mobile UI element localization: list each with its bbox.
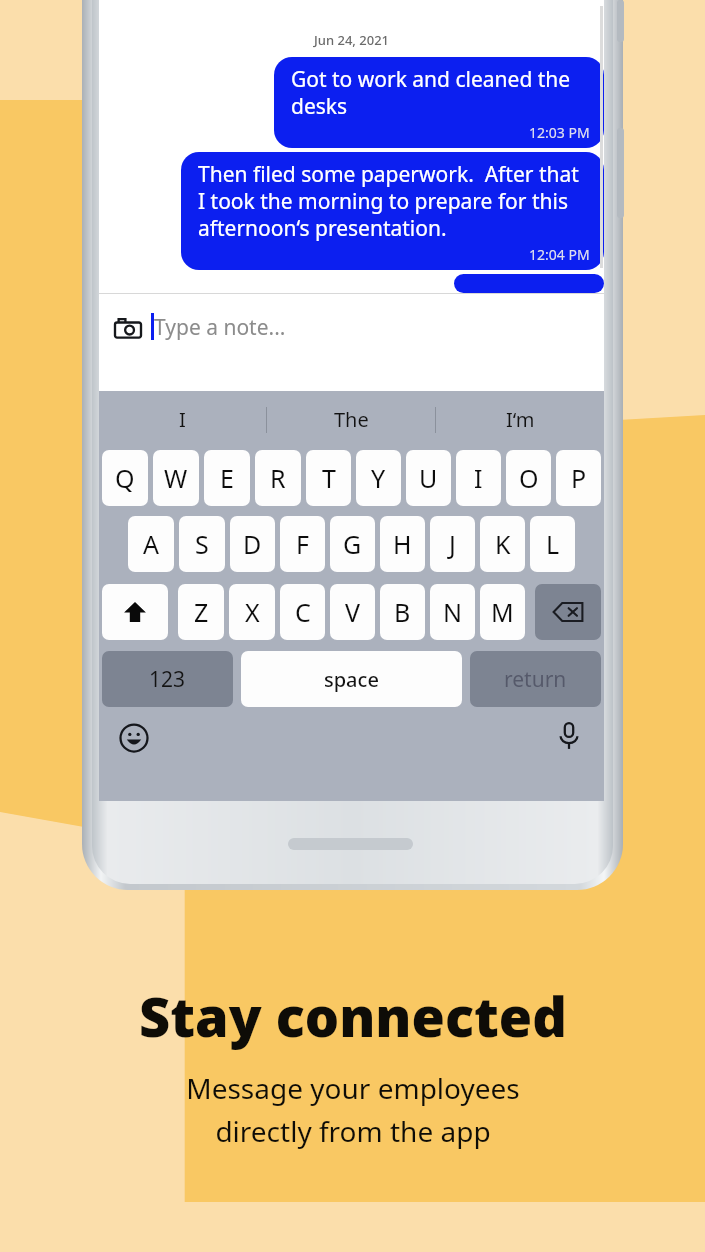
- button[interactable]: I‘m: [436, 391, 604, 448]
- button[interactable]: J: [430, 516, 475, 572]
- staticText: H: [393, 527, 412, 561]
- staticText: Message your employees: [186, 1069, 520, 1107]
- button[interactable]: H: [380, 516, 425, 572]
- button[interactable]: B: [380, 584, 425, 640]
- staticText: 12:03 PM: [529, 123, 590, 142]
- staticText: 123: [149, 665, 186, 694]
- staticText: O: [519, 461, 539, 495]
- staticText: directly from the app: [215, 1112, 491, 1150]
- button[interactable]: Z: [178, 584, 224, 640]
- button[interactable]: K: [480, 516, 525, 572]
- button[interactable]: U: [406, 450, 451, 506]
- staticText: W: [164, 461, 188, 495]
- staticText: X: [245, 595, 260, 629]
- button[interactable]: V: [330, 584, 375, 640]
- button[interactable]: A: [128, 516, 174, 572]
- staticText: A: [143, 527, 159, 561]
- button[interactable]: W: [153, 450, 199, 506]
- staticText: Then filed some paperwork. After that I …: [198, 160, 590, 242]
- button[interactable]: X: [229, 584, 275, 640]
- staticText: Jun 24, 2021: [314, 31, 389, 49]
- staticText: G: [343, 527, 362, 561]
- button[interactable]: Got to work and cleaned the desks: [274, 57, 604, 148]
- button[interactable]: Shift: [102, 584, 168, 640]
- button[interactable]: Attach photo: [99, 294, 604, 391]
- button[interactable]: Wish me luck!: [454, 274, 604, 293]
- button[interactable]: S: [179, 516, 225, 572]
- staticText: L: [546, 527, 560, 561]
- staticText: I: [474, 461, 483, 495]
- staticText: 12:04 PM: [529, 245, 590, 264]
- staticText: F: [296, 527, 309, 561]
- button[interactable]: I: [99, 391, 266, 448]
- button[interactable]: M: [480, 584, 525, 640]
- staticText: Stay connected: [139, 979, 567, 1053]
- staticText: Z: [194, 595, 209, 629]
- staticText: N: [443, 595, 463, 629]
- button[interactable]: return: [470, 651, 601, 707]
- button[interactable]: E: [204, 450, 250, 506]
- button[interactable]: N: [430, 584, 475, 640]
- button[interactable]: L: [530, 516, 575, 572]
- button[interactable]: R: [255, 450, 301, 506]
- staticText: I: [179, 406, 186, 433]
- staticText: S: [195, 527, 209, 561]
- button[interactable]: Emoji: [117, 721, 151, 755]
- staticText: V: [345, 595, 361, 629]
- button[interactable]: F: [280, 516, 325, 572]
- button[interactable]: G: [330, 516, 375, 572]
- staticText: R: [270, 461, 286, 495]
- button[interactable]: Q: [102, 450, 148, 506]
- staticText: B: [394, 595, 411, 629]
- button[interactable]: O: [506, 450, 551, 506]
- staticText: Y: [371, 461, 386, 495]
- button[interactable]: Attach photo: [113, 314, 143, 344]
- button[interactable]: C: [280, 584, 325, 640]
- staticText: K: [495, 527, 511, 561]
- button[interactable]: Y: [356, 450, 401, 506]
- staticText: C: [295, 595, 311, 629]
- button[interactable]: 123: [102, 651, 233, 707]
- button[interactable]: P: [556, 450, 601, 506]
- staticText: P: [571, 461, 587, 495]
- staticText: T: [322, 461, 336, 495]
- staticText: Type a note...: [154, 313, 286, 342]
- staticText: M: [491, 595, 514, 629]
- button[interactable]: I: [456, 450, 501, 506]
- staticText: Got to work and cleaned the desks: [291, 65, 590, 120]
- button[interactable]: Backspace: [535, 584, 601, 640]
- staticText: I‘m: [506, 406, 535, 433]
- staticText: The: [334, 406, 369, 433]
- staticText: D: [243, 527, 262, 561]
- button[interactable]: T: [306, 450, 351, 506]
- staticText: J: [449, 527, 456, 561]
- button[interactable]: Voice input: [552, 719, 586, 753]
- staticText: E: [220, 461, 234, 495]
- button[interactable]: The: [267, 391, 435, 448]
- staticText: space: [324, 666, 379, 693]
- staticText: U: [419, 461, 438, 495]
- staticText: return: [504, 665, 567, 694]
- button[interactable]: space: [241, 651, 462, 707]
- staticText: Q: [115, 461, 135, 495]
- button[interactable]: Then filed some paperwork. After that I …: [181, 152, 604, 270]
- button[interactable]: D: [230, 516, 275, 572]
